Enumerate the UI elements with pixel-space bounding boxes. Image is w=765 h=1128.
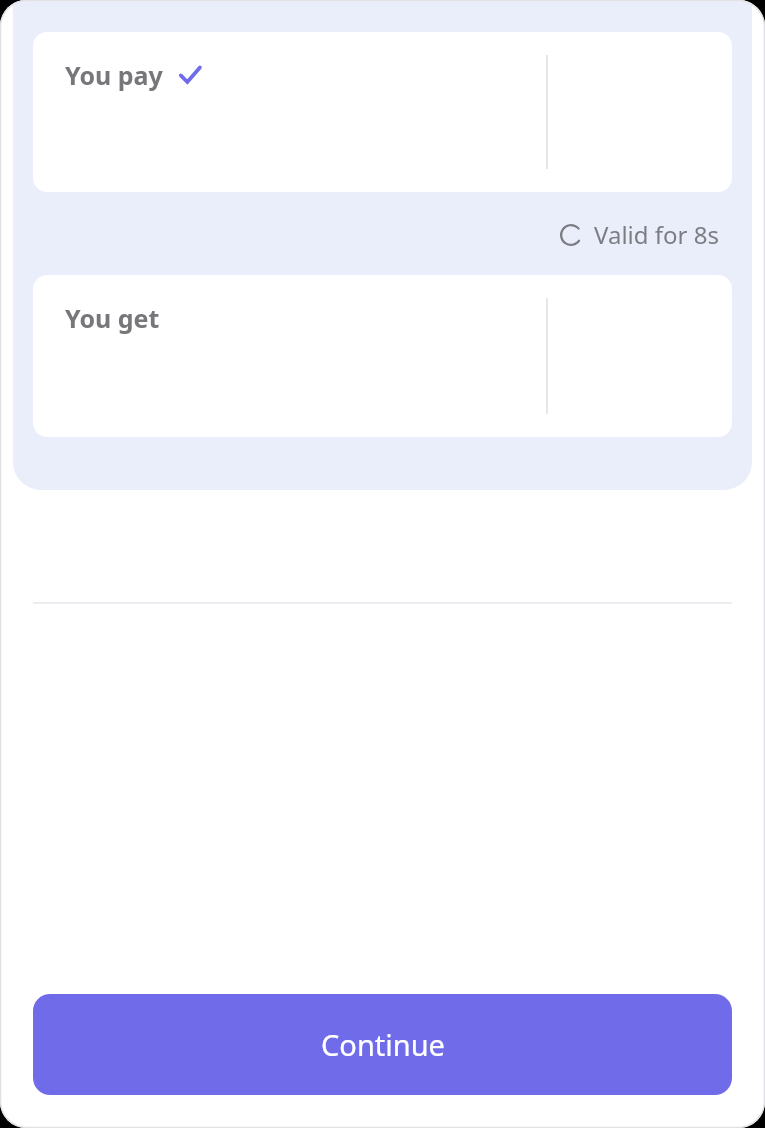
other: Amount confirmed (179, 64, 201, 86)
staticText: Valid for 8s (594, 218, 719, 251)
staticText: You get (65, 301, 160, 335)
staticText: You pay (65, 58, 163, 92)
button[interactable]: You get (33, 275, 732, 437)
staticText: Continue (321, 1025, 445, 1064)
button[interactable]: Continue (33, 994, 732, 1095)
other: Refreshing quote (560, 224, 582, 246)
button[interactable]: You pay (33, 32, 732, 192)
